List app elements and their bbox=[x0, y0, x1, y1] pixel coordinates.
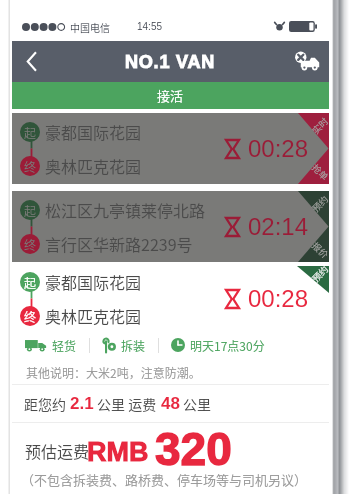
staticText: NO.1 VAN bbox=[125, 52, 216, 72]
staticText: 320 bbox=[155, 423, 232, 467]
staticText: 松江区九亭镇莱停北路 bbox=[45, 198, 206, 221]
staticText: 明天17点30分 bbox=[190, 337, 265, 354]
staticText: 48 bbox=[161, 394, 180, 413]
staticText: 终 bbox=[24, 158, 37, 175]
staticText: 奥林匹克花园 bbox=[45, 154, 142, 177]
staticText: 00:28 bbox=[248, 135, 309, 162]
staticText: 预估运费 bbox=[25, 439, 90, 462]
staticText: 抢单 bbox=[309, 161, 332, 184]
button[interactable]: Back bbox=[12, 41, 50, 82]
staticText: 奥林匹克花园 bbox=[45, 304, 142, 327]
staticText: 00:28 bbox=[248, 285, 309, 312]
staticText: 距您约 bbox=[24, 394, 66, 414]
staticText: 轻货 bbox=[52, 337, 77, 354]
staticText: 豪都国际花园 bbox=[45, 120, 142, 143]
staticText: 起 bbox=[24, 124, 37, 141]
staticText: 中国电信 bbox=[70, 20, 110, 34]
staticText: 公里 bbox=[183, 394, 211, 414]
staticText: 言行区华新路2239号 bbox=[45, 232, 193, 255]
staticText: 14:55 bbox=[137, 21, 163, 32]
staticText: 其他说明：大米2吨，注意防潮。 bbox=[26, 364, 201, 381]
staticText: 终 bbox=[24, 308, 37, 325]
staticText: 实时 bbox=[309, 114, 332, 137]
staticText: 公里 运费 bbox=[97, 394, 157, 414]
staticText: 豪都国际花园 bbox=[45, 270, 142, 293]
staticText: 预约 bbox=[309, 262, 332, 285]
staticText: 预约 bbox=[309, 192, 332, 215]
staticText: 起 bbox=[24, 202, 37, 219]
staticText: 报价 bbox=[309, 239, 332, 262]
staticText: 拆装 bbox=[121, 337, 146, 354]
staticText: （不包含拆装费、路桥费、停车场等与司机另议） bbox=[21, 470, 308, 489]
button[interactable]: Cancel order bbox=[285, 41, 329, 82]
staticText: 接活 bbox=[157, 86, 184, 105]
button[interactable]: 起 bbox=[12, 113, 329, 184]
staticText: 02:14 bbox=[248, 213, 309, 240]
button[interactable]: 起 bbox=[12, 266, 329, 489]
button[interactable]: 接活 bbox=[12, 82, 329, 109]
staticText: 起 bbox=[24, 274, 37, 291]
staticText: 终 bbox=[24, 236, 37, 253]
button[interactable]: 起 bbox=[12, 191, 329, 262]
staticText: RMB bbox=[87, 437, 149, 467]
staticText: 2.1 bbox=[70, 394, 94, 413]
